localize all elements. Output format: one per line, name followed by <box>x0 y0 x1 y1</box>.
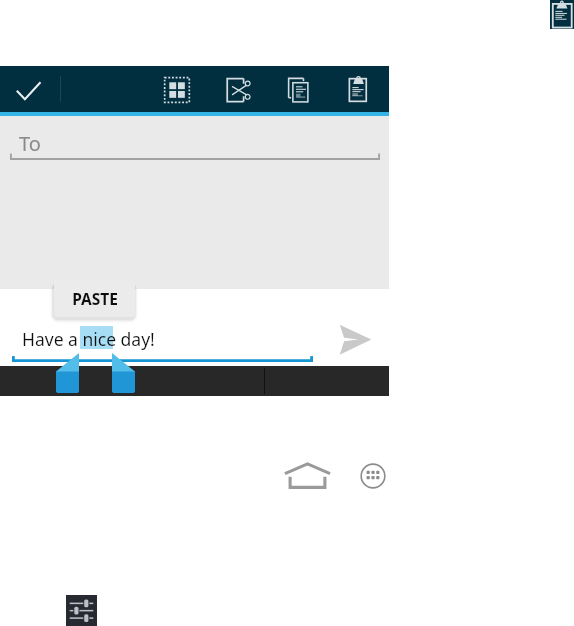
staticText: Have a nice day! <box>22 327 155 351</box>
button[interactable]: PASTE <box>54 280 135 317</box>
button[interactable]: Clipboard <box>550 0 574 29</box>
button[interactable]: Home <box>284 462 331 489</box>
button[interactable]: Settings <box>66 595 97 626</box>
staticText: PASTE <box>72 288 118 309</box>
button[interactable]: Select all <box>163 76 191 104</box>
button[interactable]: Done <box>10 74 44 104</box>
button[interactable]: Copy <box>286 76 311 104</box>
button[interactable]: All apps <box>360 463 386 489</box>
button[interactable]: Cut <box>224 76 252 104</box>
button[interactable]: Paste <box>346 76 371 104</box>
button[interactable]: Send <box>338 323 372 356</box>
staticText: To <box>19 130 41 157</box>
